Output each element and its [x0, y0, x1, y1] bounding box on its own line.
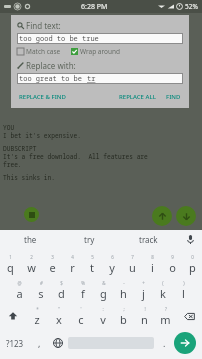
button[interactable]: # — [30, 277, 51, 303]
staticText: u — [129, 260, 136, 275]
button[interactable]: ) — [173, 277, 193, 303]
button[interactable]: Shift — [0, 303, 26, 329]
button[interactable]: REPLACE ALL — [117, 91, 158, 103]
button[interactable]: 3 — [42, 251, 62, 277]
button[interactable]: try — [60, 230, 119, 249]
staticText: d — [58, 286, 65, 301]
staticText: r — [70, 260, 75, 275]
button[interactable]: too good to be true — [17, 33, 183, 44]
staticText: a — [16, 286, 23, 301]
button[interactable]: Send — [174, 332, 196, 354]
button[interactable]: 6 — [102, 251, 122, 277]
staticText: too great to be — [19, 74, 87, 84]
button[interactable]: ( — [153, 277, 173, 303]
staticText: try — [84, 234, 95, 245]
staticText: too good to be true — [19, 34, 99, 44]
staticText: g — [100, 286, 107, 301]
staticText: FIND — [166, 93, 181, 101]
staticText: v — [100, 312, 106, 327]
staticText: o — [169, 260, 176, 275]
staticText: ( — [162, 280, 164, 286]
staticText: f — [81, 286, 85, 301]
button[interactable]: % — [72, 277, 93, 303]
staticText: $ — [60, 280, 63, 286]
staticText: 52% — [185, 2, 198, 11]
staticText: % — [81, 280, 85, 286]
staticText: @ — [17, 280, 22, 286]
button[interactable]: + — [133, 277, 153, 303]
button[interactable]: & — [93, 277, 113, 303]
button[interactable]: 1 — [0, 251, 21, 277]
staticText: t — [90, 260, 94, 275]
staticText: Replace with: — [26, 60, 76, 71]
staticText: 5 — [91, 254, 94, 260]
button[interactable]: 0 — [182, 251, 202, 277]
staticText: # — [40, 280, 43, 286]
staticText: * — [36, 306, 39, 312]
button[interactable]: Wrap around — [71, 47, 121, 56]
button[interactable]: ' — [70, 303, 92, 329]
button[interactable]: Voice input — [178, 230, 202, 249]
button[interactable]: @ — [9, 277, 30, 303]
staticText: " — [58, 306, 60, 312]
staticText: - — [123, 280, 125, 286]
button[interactable]: Find next — [176, 206, 196, 226]
staticText: h — [120, 286, 127, 301]
button[interactable]: the — [0, 230, 60, 249]
staticText: 4 — [71, 254, 74, 260]
button[interactable]: ? — [155, 303, 176, 329]
staticText: REPLACE ALL — [119, 93, 156, 101]
staticText: tr — [87, 74, 96, 84]
button[interactable]: too great to be — [17, 73, 183, 84]
button[interactable]: FIND — [164, 91, 183, 103]
button[interactable]: REPLACE & FIND — [17, 91, 68, 103]
button[interactable]: * — [26, 303, 48, 329]
button[interactable]: ; — [113, 303, 134, 329]
button[interactable]: 7 — [122, 251, 142, 277]
staticText: q — [7, 260, 14, 275]
staticText: the — [24, 234, 37, 245]
staticText: l — [182, 286, 185, 301]
staticText: This sinks in. — [3, 173, 55, 181]
button[interactable]: Backspace — [176, 303, 202, 329]
staticText: ' — [80, 306, 82, 312]
button[interactable]: " — [48, 303, 70, 329]
staticText: REPLACE & FIND — [19, 93, 66, 101]
button[interactable]: Change language — [48, 329, 68, 357]
button[interactable]: 9 — [162, 251, 182, 277]
staticText: Find text: — [26, 20, 61, 31]
button[interactable]: : — [92, 303, 113, 329]
button[interactable]: Stop — [24, 207, 39, 222]
button[interactable]: track — [119, 230, 178, 249]
staticText: j — [142, 286, 145, 301]
button[interactable]: ! — [134, 303, 155, 329]
button[interactable]: Period — [154, 329, 174, 357]
button[interactable]: Comma — [30, 329, 48, 357]
button[interactable]: Match case — [17, 47, 61, 56]
staticText: k — [160, 286, 166, 301]
staticText: I bet it's expensive. — [3, 131, 81, 139]
staticText: Match case — [26, 47, 61, 56]
staticText: free. — [3, 160, 22, 168]
button[interactable]: 8 — [142, 251, 162, 277]
staticText: , — [38, 337, 41, 349]
staticText: e — [49, 260, 56, 275]
button[interactable]: $ — [51, 277, 72, 303]
staticText: ! — [144, 306, 146, 312]
staticText: Wrap around — [80, 47, 121, 56]
button[interactable]: 5 — [82, 251, 102, 277]
staticText: b — [120, 312, 127, 327]
staticText: 6 — [111, 254, 114, 260]
staticText: 2 — [30, 254, 33, 260]
button[interactable]: ?123 — [0, 329, 30, 357]
button[interactable]: 4 — [62, 251, 82, 277]
button[interactable]: - — [113, 277, 133, 303]
staticText: s — [38, 286, 44, 301]
staticText: p — [189, 260, 196, 275]
staticText: x — [56, 312, 62, 327]
staticText: m — [160, 312, 171, 327]
staticText: i — [151, 260, 154, 275]
button[interactable]: 2 — [21, 251, 42, 277]
button[interactable]: Find previous — [152, 206, 172, 226]
